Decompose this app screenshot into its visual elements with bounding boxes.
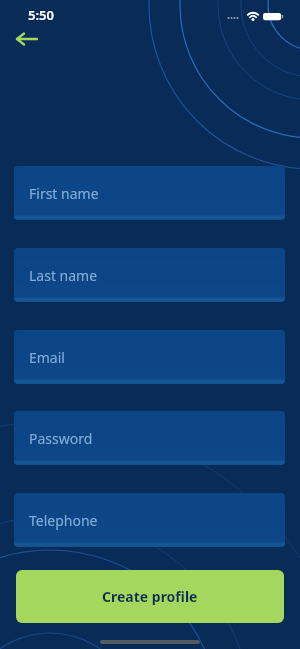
button[interactable]: First name [14, 166, 285, 220]
staticText: Create profile [102, 587, 198, 606]
staticText: Password [29, 429, 93, 448]
staticText: 5:50 [28, 6, 54, 24]
staticText: Last name [29, 266, 98, 285]
button[interactable]: Telephone [14, 493, 285, 547]
staticText: Telephone [29, 511, 98, 530]
button[interactable]: Create profile [16, 570, 284, 623]
button[interactable]: Email [14, 330, 285, 384]
button[interactable]: Last name [14, 248, 285, 302]
staticText: First name [29, 184, 99, 203]
staticText: Email [29, 348, 65, 367]
button[interactable]: Password [14, 411, 285, 465]
button[interactable] [15, 31, 39, 47]
